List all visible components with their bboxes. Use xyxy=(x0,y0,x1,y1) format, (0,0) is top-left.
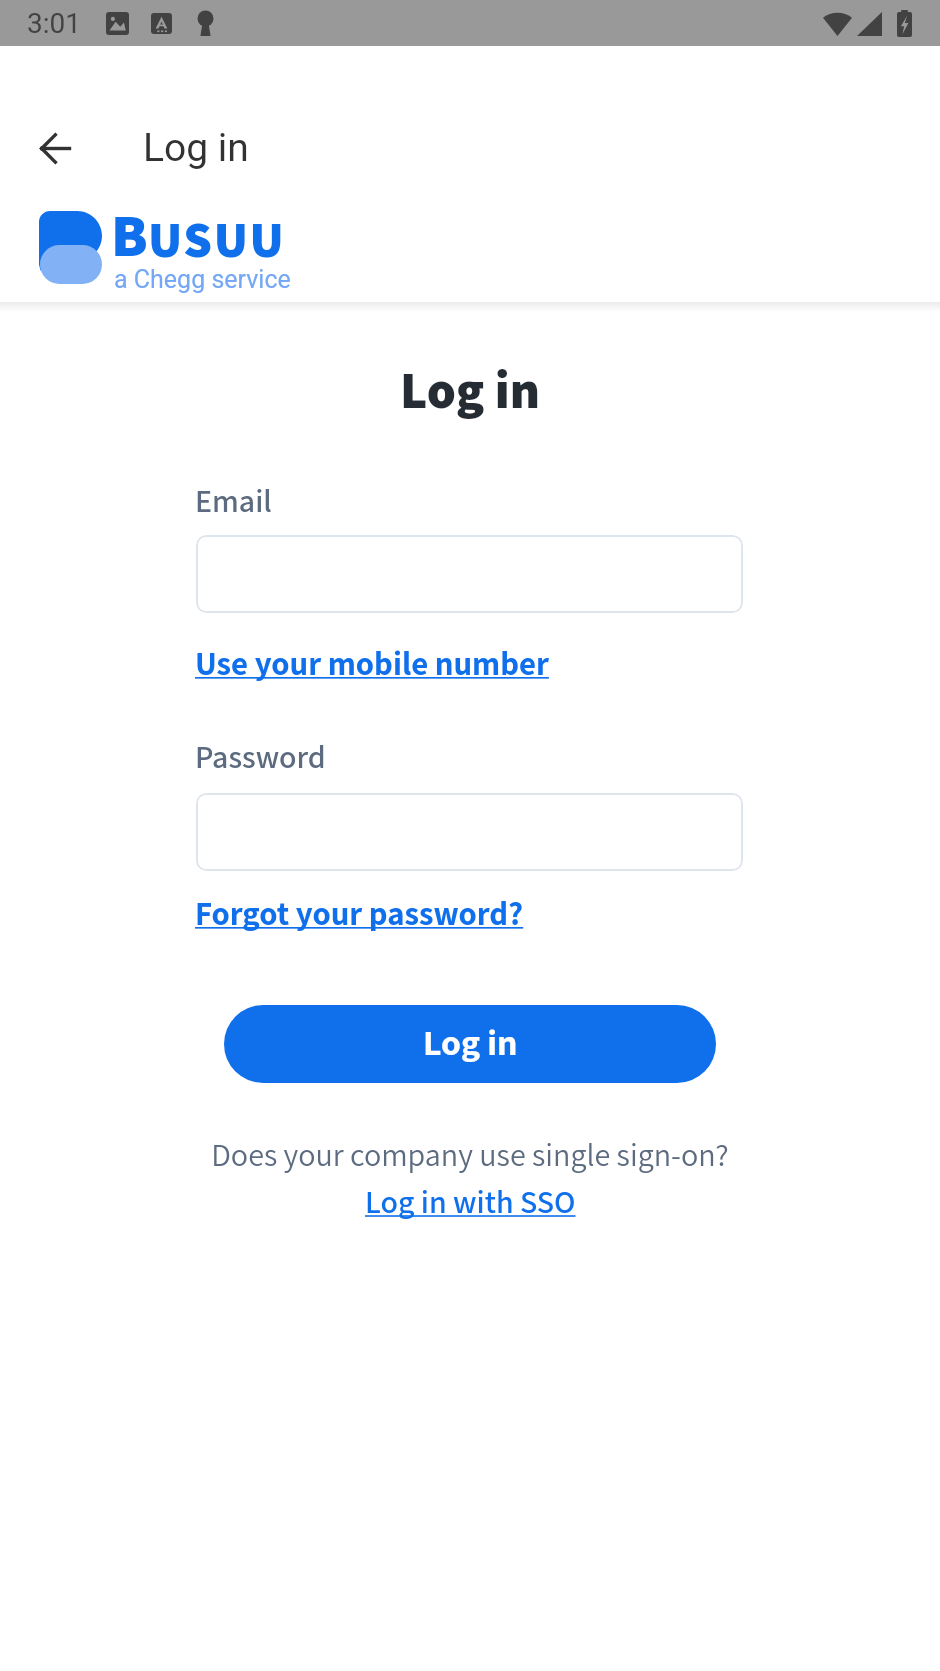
button[interactable] xyxy=(196,793,743,871)
staticText: Use your mobile number xyxy=(195,641,549,684)
staticText: USUU xyxy=(148,205,286,272)
staticText: a Chegg service xyxy=(114,265,291,294)
staticText: Does your company use single sign-on? xyxy=(0,1133,940,1175)
button[interactable]: Log in xyxy=(224,1005,716,1083)
staticText: B xyxy=(111,195,148,273)
staticText: 3:01 xyxy=(27,7,81,40)
staticText: Forgot your password? xyxy=(195,891,524,934)
button[interactable]: Use your mobile number xyxy=(195,641,549,684)
button[interactable]: Forgot your password? xyxy=(195,891,524,934)
button[interactable]: Back xyxy=(22,115,88,182)
staticText: Log in xyxy=(143,125,249,171)
button[interactable] xyxy=(196,535,743,613)
button[interactable]: Log in with SSO xyxy=(365,1180,576,1222)
staticText: Log in xyxy=(0,355,940,423)
staticText: Log in with SSO xyxy=(365,1180,576,1222)
staticText: Password xyxy=(195,735,326,777)
staticText: Email xyxy=(195,479,272,521)
staticText: Log in xyxy=(423,1018,518,1065)
